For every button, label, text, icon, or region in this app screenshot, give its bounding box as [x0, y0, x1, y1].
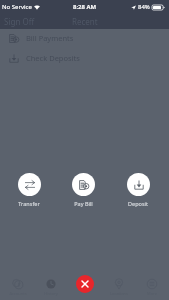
button[interactable]: History	[36, 268, 65, 296]
button[interactable]: Transfer	[9, 173, 49, 207]
staticText: Transfer	[18, 200, 40, 207]
button[interactable]: Close menu	[76, 275, 94, 293]
staticText: Sign Off	[4, 16, 35, 27]
staticText: 84%	[138, 3, 150, 11]
staticText: Deposit	[128, 200, 148, 207]
staticText: No Service	[2, 3, 32, 11]
staticText: 8:28 AM	[73, 3, 97, 11]
button[interactable]: Bill Payments	[0, 28, 169, 48]
button[interactable]: Sign Off	[0, 14, 38, 29]
button[interactable]: Pay Bill	[63, 173, 103, 207]
button[interactable]: Deposit	[118, 173, 158, 207]
staticText: Bill Payments	[26, 33, 74, 43]
staticText: Check Deposits	[26, 53, 80, 63]
staticText: Recent	[72, 16, 98, 27]
staticText: Pay Bill	[74, 200, 93, 207]
